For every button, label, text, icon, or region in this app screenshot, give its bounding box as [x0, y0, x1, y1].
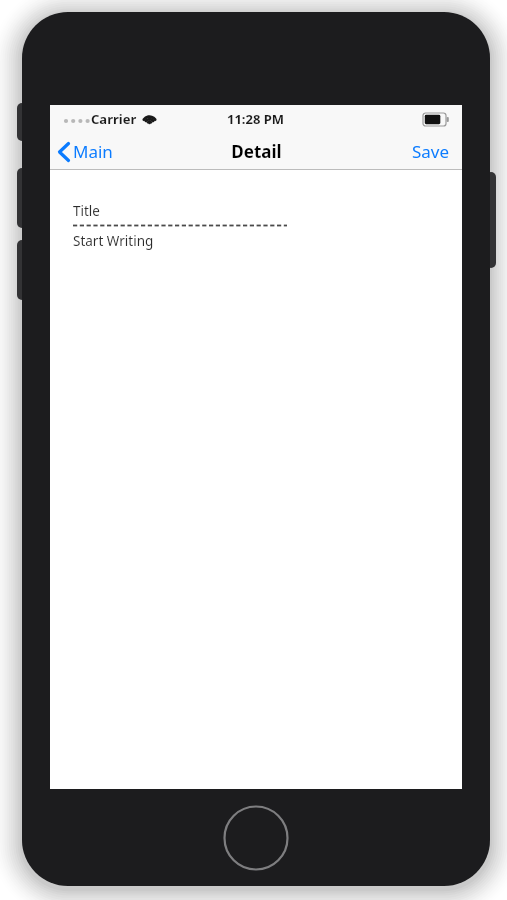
staticText: 11:28 PM [227, 110, 285, 128]
button[interactable]: Title [73, 202, 100, 220]
staticText: Start Writing [73, 232, 154, 250]
staticText: Title [73, 202, 100, 220]
staticText: Save [412, 140, 450, 163]
staticText: Main [73, 140, 113, 163]
staticText: Detail [231, 140, 282, 163]
button[interactable]: Start Writing [73, 232, 154, 250]
staticText: Carrier [91, 110, 137, 128]
button[interactable]: Main [50, 133, 123, 170]
button[interactable]: Save [400, 133, 462, 170]
